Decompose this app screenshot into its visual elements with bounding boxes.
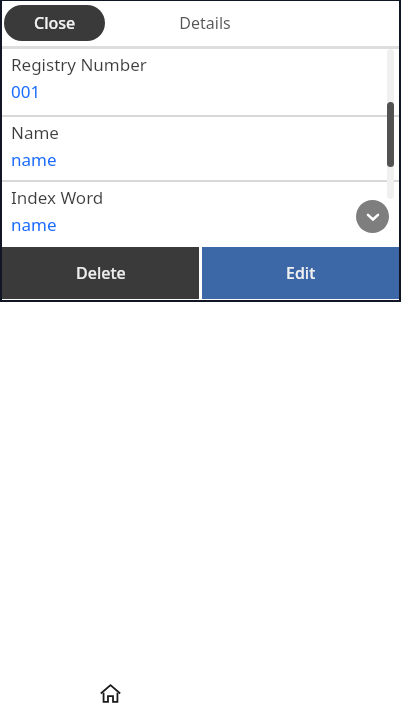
button[interactable]: Name [2,117,399,180]
button[interactable]: Edit [202,247,399,299]
button[interactable]: Scroll down [356,200,389,233]
staticText: Delete [76,262,126,284]
staticText: Details [179,12,231,34]
staticText: Edit [286,262,316,284]
button[interactable]: Home [98,681,122,705]
staticText: Name [11,121,59,144]
staticText: name [11,213,57,236]
staticText: 001 [11,80,41,103]
button[interactable]: Close [4,5,105,41]
button[interactable]: Delete [2,247,199,299]
staticText: Index Word [11,186,104,209]
button[interactable]: Index Word [2,182,399,245]
staticText: name [11,148,57,171]
button[interactable]: Registry Number [2,49,399,115]
staticText: Close [34,12,76,34]
staticText: Registry Number [11,53,147,76]
